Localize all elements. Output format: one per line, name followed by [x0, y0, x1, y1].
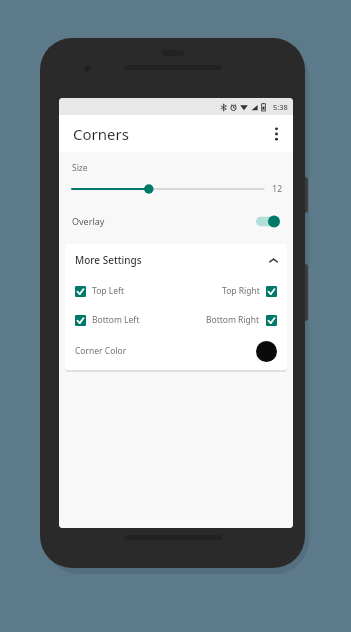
button[interactable]: Corner Color: [65, 334, 287, 368]
button[interactable]: 12: [59, 174, 293, 204]
staticText: Overlay: [72, 215, 105, 227]
button[interactable]: More Settings: [65, 244, 287, 276]
button[interactable]: Top Right: [222, 285, 277, 297]
button[interactable]: Overlay: [59, 204, 293, 238]
staticText: Top Left: [92, 285, 124, 297]
staticText: Corners: [73, 124, 129, 144]
staticText: Bottom Right: [206, 314, 260, 326]
button[interactable]: Bottom Right: [206, 314, 277, 326]
button[interactable]: More options: [263, 121, 289, 147]
staticText: 5:38: [273, 102, 288, 112]
staticText: Corner Color: [75, 345, 127, 357]
staticText: Size: [72, 162, 88, 174]
button[interactable]: Bottom Left: [75, 314, 140, 326]
staticText: 12: [272, 183, 282, 195]
staticText: More Settings: [75, 253, 142, 267]
staticText: Bottom Left: [92, 314, 140, 326]
button[interactable]: Top Left: [75, 285, 124, 297]
staticText: Top Right: [222, 285, 260, 297]
